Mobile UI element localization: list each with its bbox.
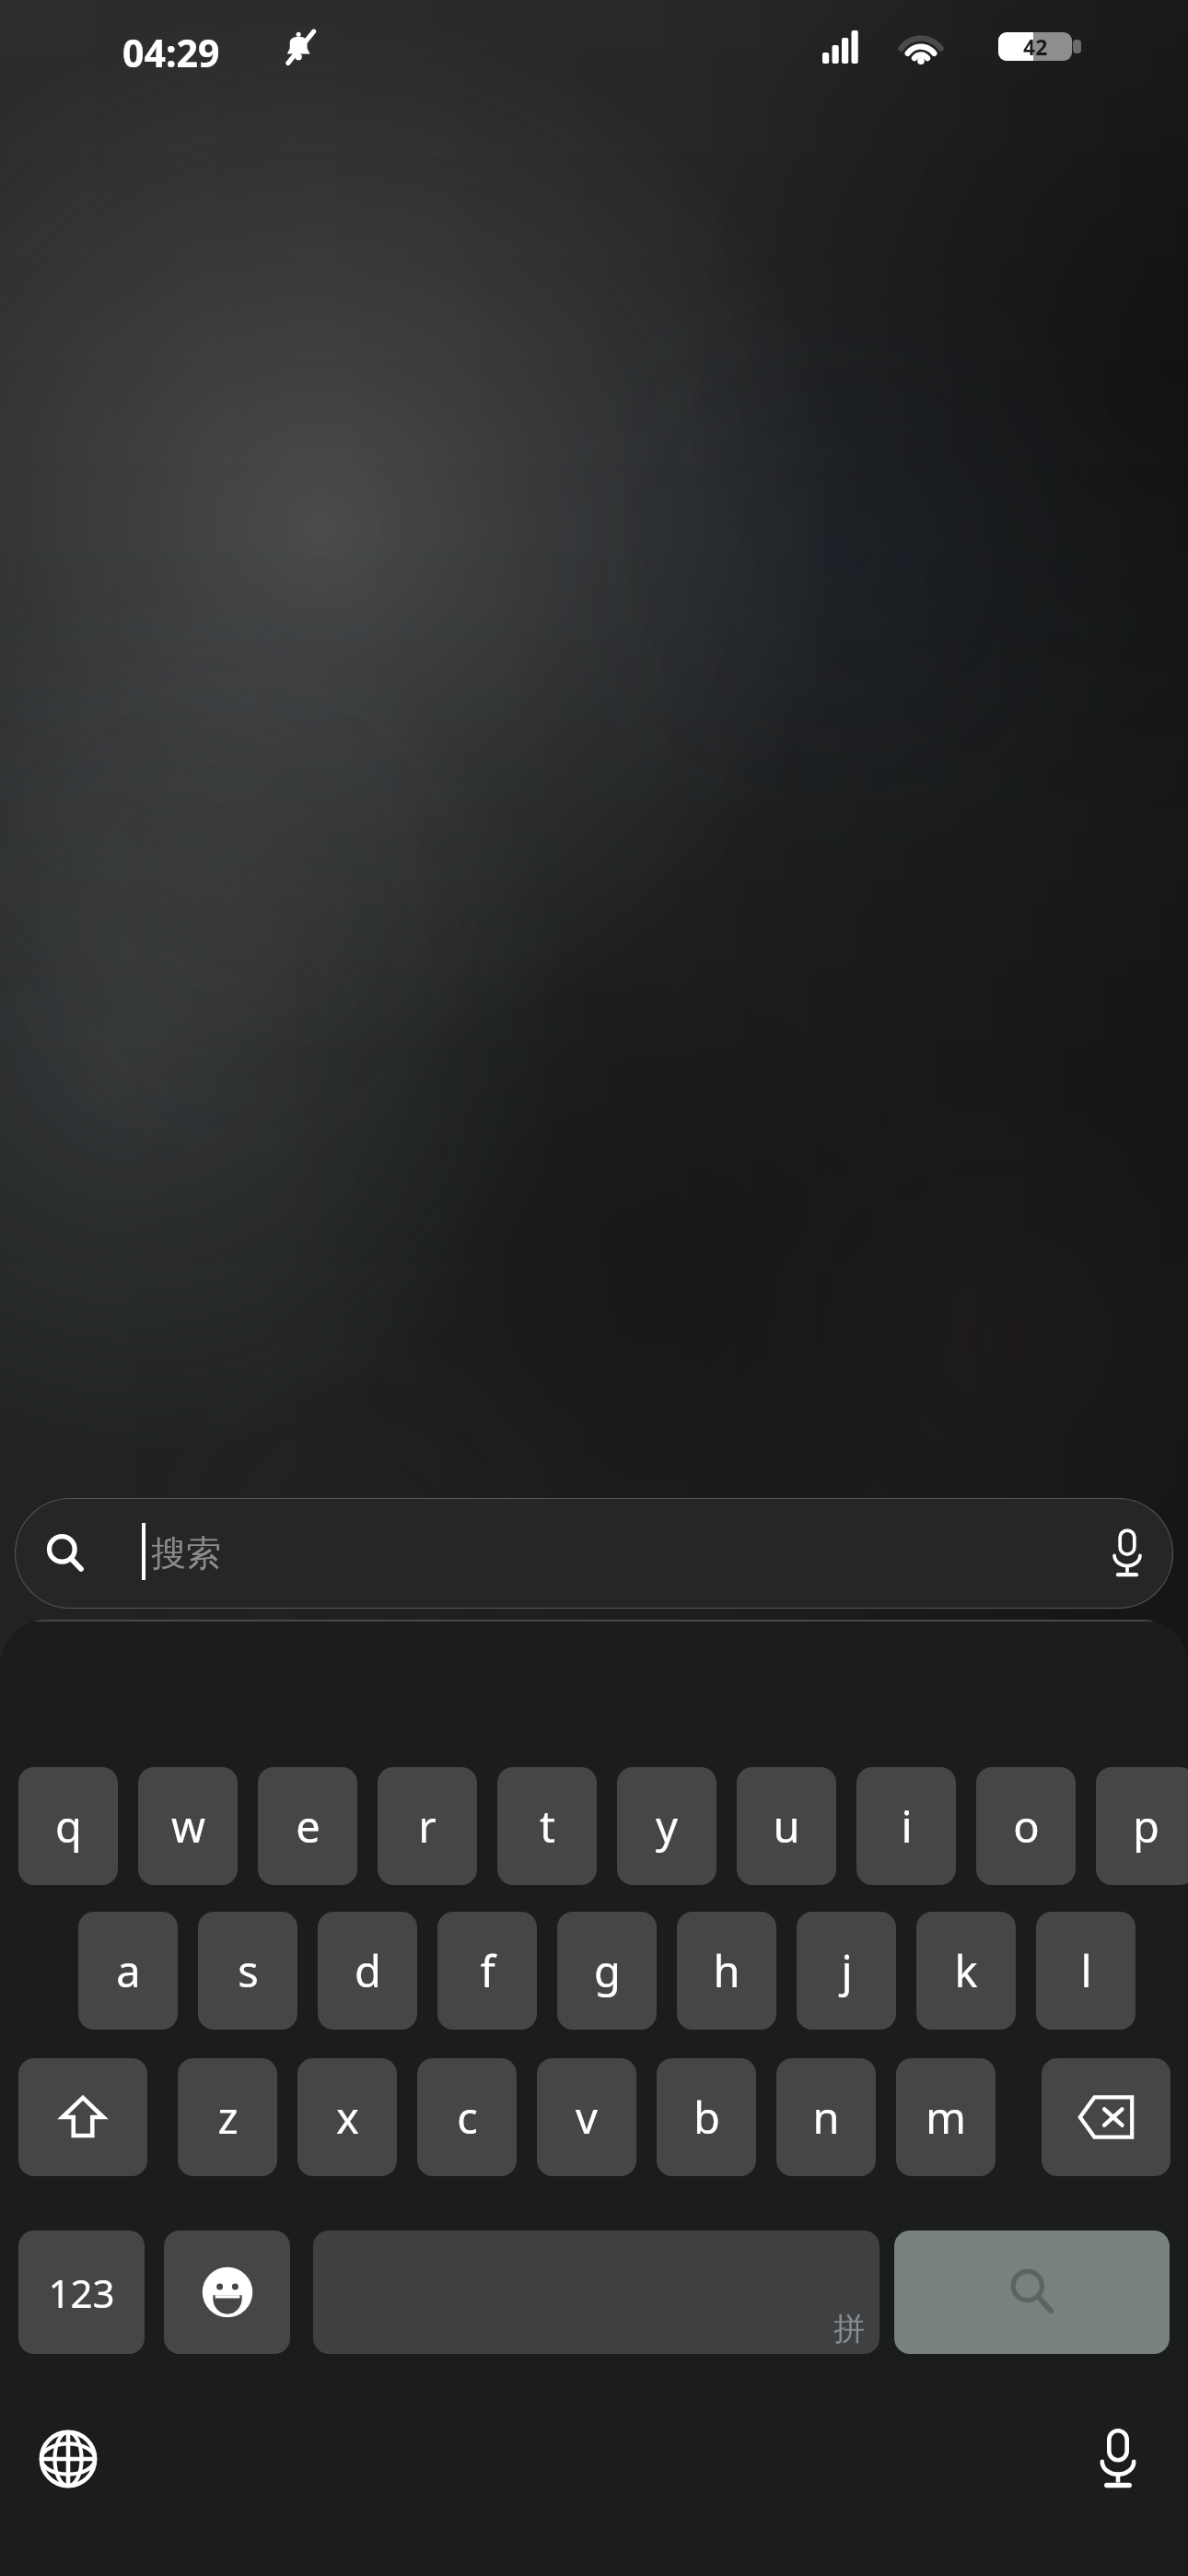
button[interactable]: Change language — [17, 2407, 120, 2511]
staticText: g — [594, 1941, 621, 2000]
staticText: m — [926, 2088, 966, 2147]
button[interactable]: f — [437, 1912, 537, 2030]
button[interactable]: s — [198, 1912, 297, 2030]
other: Search — [44, 1532, 87, 1575]
staticText: x — [336, 2088, 359, 2147]
staticText: z — [217, 2088, 239, 2147]
staticText: y — [656, 1797, 678, 1856]
staticText: f — [480, 1941, 495, 2000]
button[interactable]: Emoji — [164, 2231, 290, 2354]
button[interactable]: n — [776, 2058, 876, 2176]
button[interactable]: Voice input — [1066, 2407, 1170, 2511]
staticText: a — [116, 1941, 141, 2000]
staticText: e — [296, 1797, 320, 1856]
staticText: v — [576, 2088, 598, 2147]
button[interactable]: q — [18, 1767, 118, 1885]
staticText: r — [418, 1797, 437, 1856]
staticText: 123 — [48, 2266, 115, 2319]
staticText: t — [540, 1797, 555, 1856]
button[interactable]: k — [916, 1912, 1016, 2030]
button[interactable]: w — [138, 1767, 238, 1885]
staticText: k — [954, 1941, 978, 2000]
staticText: w — [171, 1797, 205, 1856]
staticText: s — [238, 1941, 259, 2000]
button[interactable]: h — [677, 1912, 776, 2030]
button[interactable]: t — [497, 1767, 597, 1885]
button[interactable]: o — [976, 1767, 1076, 1885]
button[interactable]: v — [537, 2058, 636, 2176]
staticText: o — [1013, 1797, 1040, 1856]
staticText: 04:29 — [122, 27, 220, 78]
button[interactable]: d — [318, 1912, 417, 2030]
staticText: u — [773, 1797, 800, 1856]
button[interactable]: m — [896, 2058, 996, 2176]
staticText: j — [841, 1941, 853, 2000]
button[interactable]: Search — [15, 1498, 1173, 1609]
staticText: 42 — [1023, 32, 1048, 61]
staticText: c — [457, 2088, 478, 2147]
button[interactable]: Shift — [18, 2058, 147, 2176]
staticText: q — [55, 1797, 82, 1856]
button[interactable]: y — [617, 1767, 716, 1885]
button[interactable]: z — [178, 2058, 277, 2176]
button[interactable]: c — [417, 2058, 517, 2176]
staticText: d — [355, 1941, 381, 2000]
button[interactable]: u — [737, 1767, 836, 1885]
button[interactable]: j — [797, 1912, 896, 2030]
staticText: h — [713, 1941, 740, 2000]
staticText: l — [1080, 1941, 1092, 2000]
button[interactable]: e — [258, 1767, 357, 1885]
staticText: b — [693, 2088, 720, 2147]
button[interactable]: a — [78, 1912, 178, 2030]
button[interactable]: l — [1036, 1912, 1136, 2030]
button[interactable]: x — [297, 2058, 397, 2176]
button[interactable]: i — [856, 1767, 956, 1885]
staticText: p — [1133, 1797, 1159, 1856]
button[interactable]: g — [557, 1912, 657, 2030]
button[interactable]: Search — [894, 2231, 1170, 2354]
button[interactable]: p — [1096, 1767, 1188, 1885]
button[interactable]: 123 — [18, 2231, 145, 2354]
staticText: 搜索 — [151, 1531, 221, 1575]
button[interactable]: r — [378, 1767, 477, 1885]
other: Voice search — [1112, 1529, 1143, 1577]
button[interactable]: Backspace — [1042, 2058, 1171, 2176]
staticText: n — [812, 2088, 840, 2147]
button[interactable]: Space — [313, 2231, 879, 2354]
staticText: 拼 — [833, 2309, 865, 2348]
button[interactable]: b — [657, 2058, 756, 2176]
staticText: i — [901, 1797, 913, 1856]
other: Silent mode — [279, 27, 321, 69]
